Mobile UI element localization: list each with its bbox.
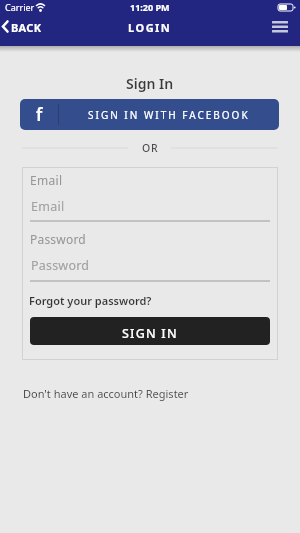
- button[interactable]: [266, 18, 294, 36]
- button[interactable]: Forgot your password?: [29, 290, 152, 310]
- staticText: SIGN IN: [122, 325, 178, 342]
- staticText: SIGN IN WITH FACEBOOK: [88, 108, 250, 122]
- staticText: f: [36, 103, 43, 126]
- staticText: OR: [142, 141, 159, 155]
- button[interactable]: Don't have an account? Register: [23, 383, 189, 403]
- staticText: Email: [30, 172, 63, 188]
- staticText: LOGIN: [128, 20, 172, 35]
- button[interactable]: [23, 190, 277, 223]
- button[interactable]: BACK: [11, 17, 42, 37]
- staticText: 11:20 PM: [130, 1, 170, 13]
- staticText: Sign In: [126, 74, 174, 93]
- staticText: Email: [31, 198, 65, 215]
- staticText: Password: [31, 257, 90, 274]
- staticText: Carrier: [5, 1, 35, 13]
- staticText: Password: [30, 231, 86, 247]
- staticText: BACK: [11, 20, 42, 35]
- button[interactable]: SIGN IN: [30, 317, 270, 345]
- staticText: Don't have an account? Register: [23, 386, 189, 401]
- button[interactable]: f: [20, 99, 279, 130]
- staticText: Forgot your password?: [29, 293, 152, 308]
- button[interactable]: [23, 248, 277, 283]
